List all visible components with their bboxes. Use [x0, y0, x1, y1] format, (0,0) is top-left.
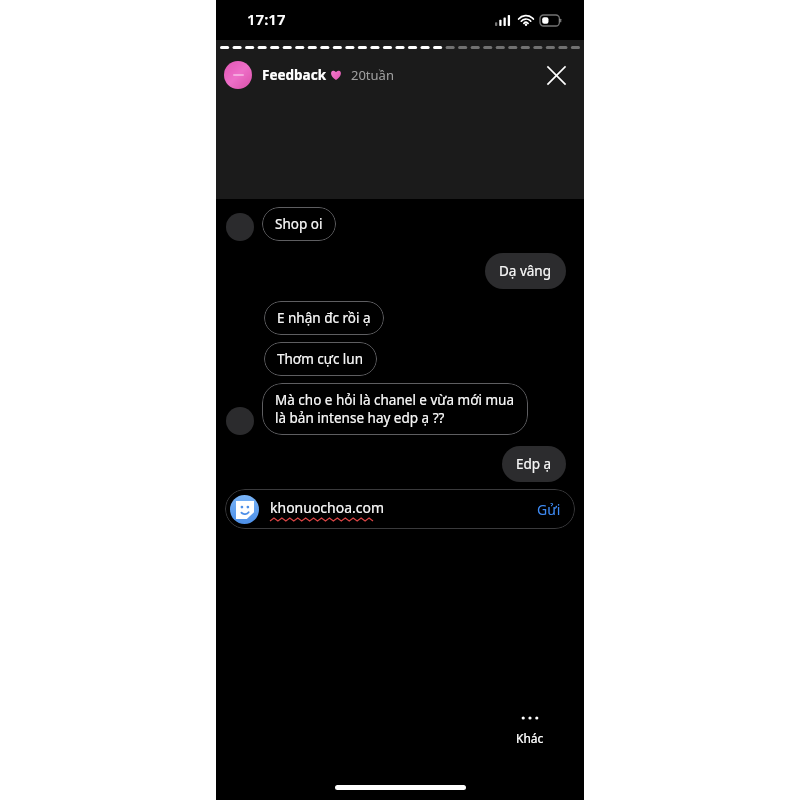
button[interactable]: Dạ vâng — [485, 253, 566, 289]
button[interactable]: Shop oi — [262, 207, 336, 241]
button[interactable]: Thơm cực lun — [264, 342, 377, 376]
button[interactable]: Gửi — [523, 492, 575, 527]
button[interactable]: Sender avatar — [226, 213, 254, 241]
button[interactable]: Sender avatar — [226, 407, 254, 435]
staticText: 20tuần — [351, 66, 394, 84]
staticText: Shop oi — [275, 215, 323, 233]
button[interactable]: Khác — [508, 711, 552, 750]
staticText: Dạ vâng — [499, 262, 552, 280]
button[interactable]: Edp ạ — [502, 446, 566, 482]
staticText: Edp ạ — [516, 455, 552, 473]
staticText: 17:17 — [247, 9, 286, 29]
button[interactable]: E nhận đc rồi ạ — [264, 301, 384, 335]
button[interactable]: Close — [534, 54, 578, 96]
staticText: khonuochoa.com — [270, 498, 385, 517]
staticText: E nhận đc rồi ạ — [277, 309, 371, 327]
staticText: Mà cho e hỏi là chanel e vừa mới mua là … — [275, 391, 515, 427]
staticText: Gửi — [537, 500, 561, 519]
button[interactable]: Profile picture — [224, 61, 252, 89]
staticText: Khác — [516, 730, 544, 746]
button[interactable]: Mà cho e hỏi là chanel e vừa mới mua là … — [262, 383, 528, 435]
staticText: Thơm cực lun — [277, 350, 364, 368]
staticText: Feedback — [262, 66, 327, 84]
button[interactable]: khonuochoa.com — [225, 489, 575, 529]
